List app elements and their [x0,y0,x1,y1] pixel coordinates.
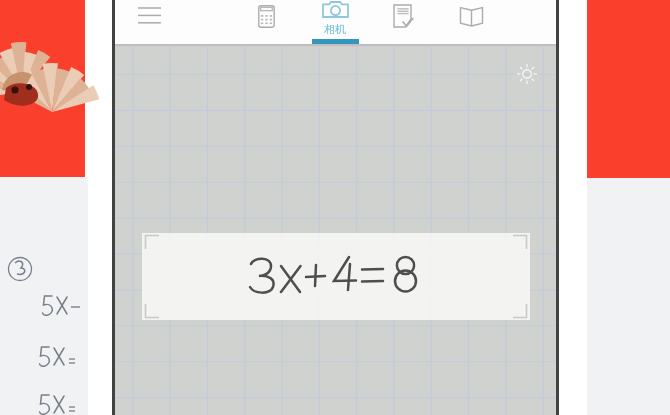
button[interactable]: 相机 [303,0,367,44]
button[interactable]: Brightness [513,60,541,88]
staticText: 相机 [324,22,346,36]
button[interactable]: Scan equation [142,233,530,320]
button[interactable]: Menu [123,0,175,30]
button[interactable]: Calculator [246,0,286,32]
button[interactable]: Book [451,0,491,32]
button[interactable]: Notes [383,0,423,32]
